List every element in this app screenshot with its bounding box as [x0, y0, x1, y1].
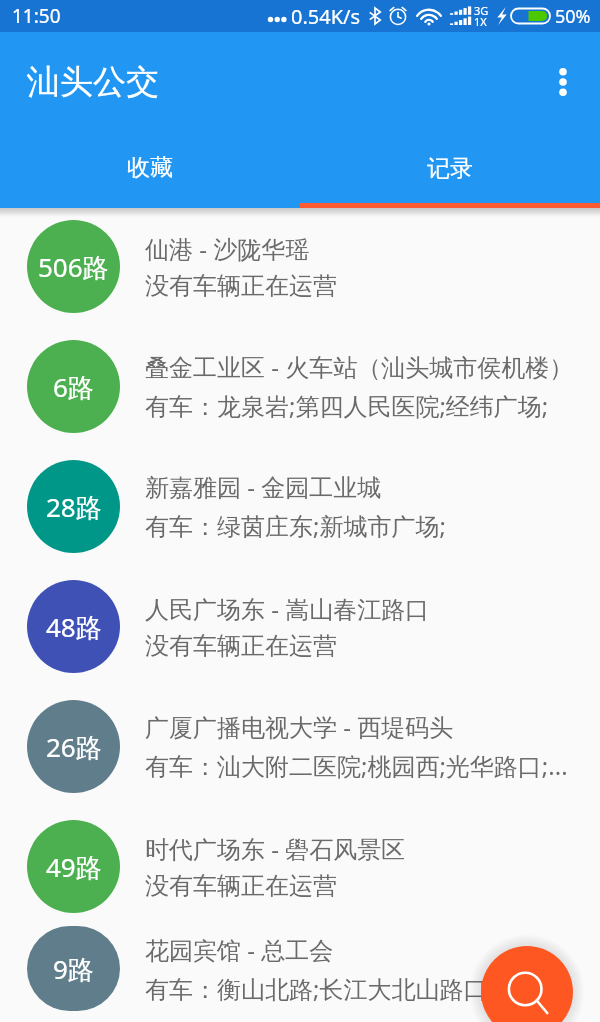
- staticText: 有车：衡山北路;长江大北山路口;: [145, 972, 494, 1005]
- staticText: 汕头公交: [27, 61, 159, 103]
- staticText: 有车：汕大附二医院;桃园西;光华路口;...: [145, 749, 568, 782]
- button[interactable]: 9路: [0, 926, 600, 1011]
- staticText: 广厦广播电视大学 - 西堤码头: [145, 710, 454, 743]
- button[interactable]: 6路: [0, 326, 600, 446]
- staticText: 没有车辆正在运营: [145, 271, 337, 301]
- staticText: 6路: [53, 369, 94, 405]
- staticText: 9路: [53, 951, 94, 987]
- staticText: 3G 1X: [474, 3, 489, 29]
- button[interactable]: 收藏: [0, 138, 300, 208]
- button[interactable]: 记录: [300, 138, 600, 208]
- button[interactable]: 26路: [0, 686, 600, 806]
- staticText: 花园宾馆 - 总工会: [145, 933, 334, 966]
- staticText: 新嘉雅园 - 金园工业城: [145, 470, 382, 503]
- staticText: 11:50: [12, 3, 61, 29]
- button[interactable]: 506路: [0, 206, 600, 326]
- staticText: 收藏: [127, 153, 173, 182]
- staticText: 人民广场东 - 嵩山春江路口: [145, 592, 430, 625]
- staticText: 28路: [46, 489, 102, 525]
- staticText: 有车：绿茵庄东;新城市广场;: [145, 509, 446, 542]
- staticText: 没有车辆正在运营: [145, 631, 337, 661]
- staticText: 仙港 - 沙陇华瑶: [145, 232, 310, 265]
- staticText: 50%: [555, 4, 591, 29]
- staticText: 没有车辆正在运营: [145, 871, 337, 901]
- staticText: 26路: [46, 729, 102, 765]
- staticText: 有车：龙泉岩;第四人民医院;经纬广场;: [145, 389, 549, 422]
- button[interactable]: More options: [539, 58, 587, 106]
- button[interactable]: Search: [481, 946, 573, 1022]
- staticText: 时代广场东 - 礐石风景区: [145, 832, 406, 865]
- staticText: 叠金工业区 - 火车站（汕头城市侯机楼）: [145, 350, 574, 383]
- staticText: 0.54K/s: [291, 3, 361, 30]
- staticText: 506路: [38, 249, 109, 285]
- button[interactable]: 48路: [0, 566, 600, 686]
- staticText: 49路: [46, 849, 102, 885]
- button[interactable]: 28路: [0, 446, 600, 566]
- staticText: 记录: [427, 154, 473, 183]
- staticText: 48路: [46, 609, 102, 645]
- button[interactable]: 49路: [0, 806, 600, 926]
